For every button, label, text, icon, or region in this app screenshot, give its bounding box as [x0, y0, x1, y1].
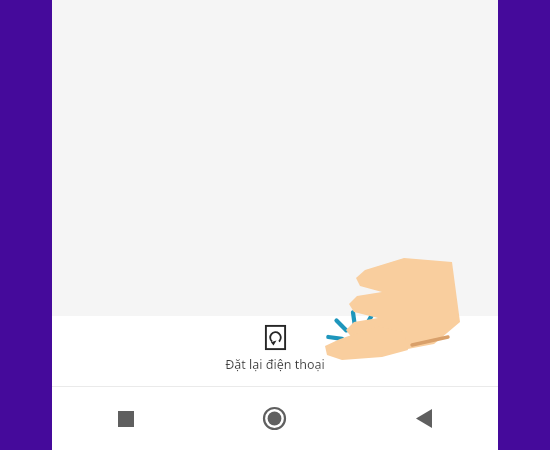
button[interactable]: Recents [52, 387, 200, 450]
button[interactable]: Home [200, 387, 349, 450]
staticText: Đặt lại điện thoại [225, 356, 325, 373]
button[interactable]: Đặt lại điện thoại [52, 316, 498, 386]
button[interactable]: Back [349, 387, 498, 450]
